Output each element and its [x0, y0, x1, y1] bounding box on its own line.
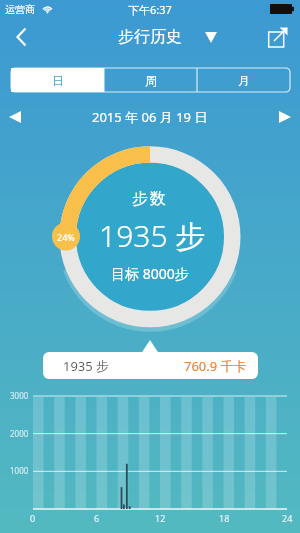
button[interactable]: 月 [197, 68, 290, 92]
staticText: 2015 年 06 月 19 日 [92, 108, 208, 126]
staticText: 1935 步 [63, 357, 110, 375]
staticText: 6 [94, 512, 100, 524]
button[interactable]: 步行历史 [75, 18, 225, 56]
button[interactable]: 日 [11, 68, 104, 92]
button[interactable]: Next day [273, 105, 297, 129]
staticText: 下午6:37 [128, 2, 172, 17]
staticText: 步数 [132, 189, 168, 209]
staticText: 运营商 [5, 3, 35, 16]
staticText: 步行历史 [118, 27, 182, 47]
staticText: 12 [155, 512, 166, 524]
staticText: 周 [145, 73, 157, 88]
button[interactable]: Share [260, 18, 296, 56]
staticText: 2000 [10, 428, 29, 439]
staticText: 18 [219, 512, 230, 524]
button[interactable]: 1935 步 [43, 352, 258, 379]
staticText: 月 [238, 73, 250, 88]
staticText: 0 [30, 512, 36, 524]
button[interactable]: Previous day [3, 105, 27, 129]
staticText: 3000 [10, 390, 29, 401]
staticText: 760.9 千卡 [184, 357, 247, 375]
staticText: 目标 8000步 [111, 264, 189, 283]
staticText: 日 [52, 73, 64, 88]
button[interactable]: 周 [104, 68, 197, 92]
staticText: 1000 [10, 465, 29, 476]
staticText: 24% [57, 231, 75, 243]
button[interactable]: Back [0, 18, 42, 56]
staticText: 1935 步 [99, 215, 206, 256]
staticText: 24 [282, 512, 293, 524]
